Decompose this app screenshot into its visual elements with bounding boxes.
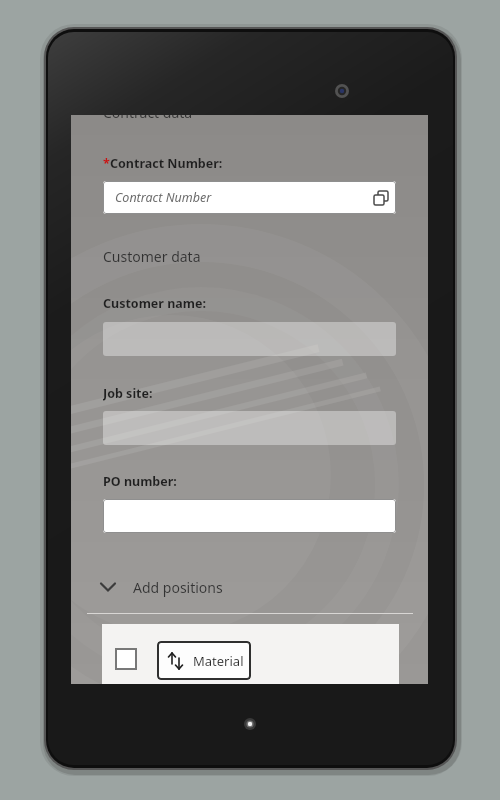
button[interactable] xyxy=(115,648,137,670)
staticText: Contract Number: xyxy=(110,155,223,171)
button[interactable] xyxy=(103,499,396,533)
staticText: * xyxy=(103,155,110,171)
staticText: Contract data xyxy=(103,115,193,122)
button[interactable]: Add positions xyxy=(99,575,223,599)
staticText: Job site: xyxy=(103,385,153,401)
staticText: Add positions xyxy=(133,578,223,597)
staticText: Material xyxy=(193,652,244,670)
button[interactable]: Contract Number xyxy=(103,181,396,214)
staticText: Contract Number xyxy=(115,189,212,206)
button[interactable]: Material xyxy=(157,641,251,680)
staticText: Customer data xyxy=(103,247,201,266)
staticText: PO number: xyxy=(103,473,177,489)
staticText: Customer name: xyxy=(103,295,206,311)
